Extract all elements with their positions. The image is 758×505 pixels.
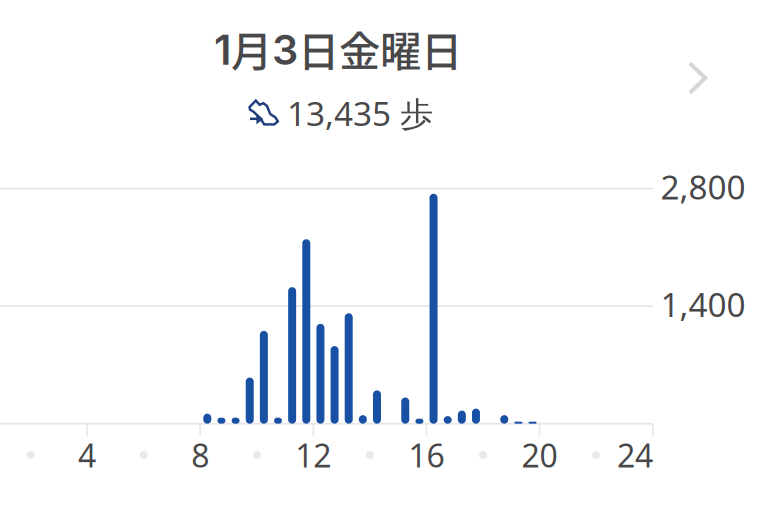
staticText: 8 bbox=[191, 434, 209, 476]
staticText: 2,800 bbox=[660, 164, 745, 209]
staticText: 4 bbox=[78, 434, 96, 476]
staticText: 13,435 歩 bbox=[287, 91, 433, 135]
staticText: 20 bbox=[522, 434, 558, 476]
staticText: 24 bbox=[617, 434, 653, 476]
staticText: 12 bbox=[295, 434, 331, 476]
button[interactable]: Next day bbox=[686, 58, 710, 98]
staticText: 16 bbox=[408, 434, 444, 476]
staticText: 1月3日金曜日 bbox=[214, 19, 462, 78]
staticText: 1,400 bbox=[660, 282, 745, 326]
